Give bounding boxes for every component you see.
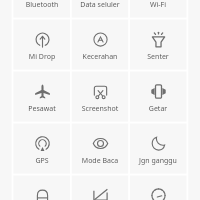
button[interactable]: Timer — [129, 174, 187, 200]
staticText: Kecerahan — [71, 52, 129, 62]
staticText: Screenshot — [71, 104, 129, 114]
button[interactable]: Pesawat — [13, 70, 71, 122]
staticText: GPS — [13, 156, 71, 166]
button[interactable]: Bluetooth — [13, 0, 71, 18]
button[interactable]: Cast screen — [71, 174, 129, 200]
button[interactable]: GPS — [13, 122, 71, 174]
button[interactable]: Getar — [129, 70, 187, 122]
button[interactable]: Mi Drop — [13, 18, 71, 70]
button[interactable]: Data seluler — [71, 0, 129, 18]
button[interactable]: Mode Baca — [71, 122, 129, 174]
staticText: Bluetooth — [13, 0, 71, 10]
staticText: Mode Baca — [71, 156, 129, 166]
staticText: Pesawat — [13, 104, 71, 114]
button[interactable]: Kecerahan — [71, 18, 129, 70]
button[interactable]: Senter — [129, 18, 187, 70]
staticText: Senter — [129, 52, 187, 62]
button[interactable]: Screenshot — [71, 70, 129, 122]
button[interactable]: Wi-Fi — [129, 0, 187, 18]
staticText: Mi Drop — [13, 52, 71, 62]
button[interactable]: Jgn ganggu — [129, 122, 187, 174]
button[interactable]: Battery saver — [13, 174, 71, 200]
staticText: Wi-Fi — [129, 0, 187, 10]
staticText: Getar — [129, 104, 187, 114]
staticText: Jgn ganggu — [129, 156, 187, 166]
staticText: Data seluler — [71, 0, 129, 10]
